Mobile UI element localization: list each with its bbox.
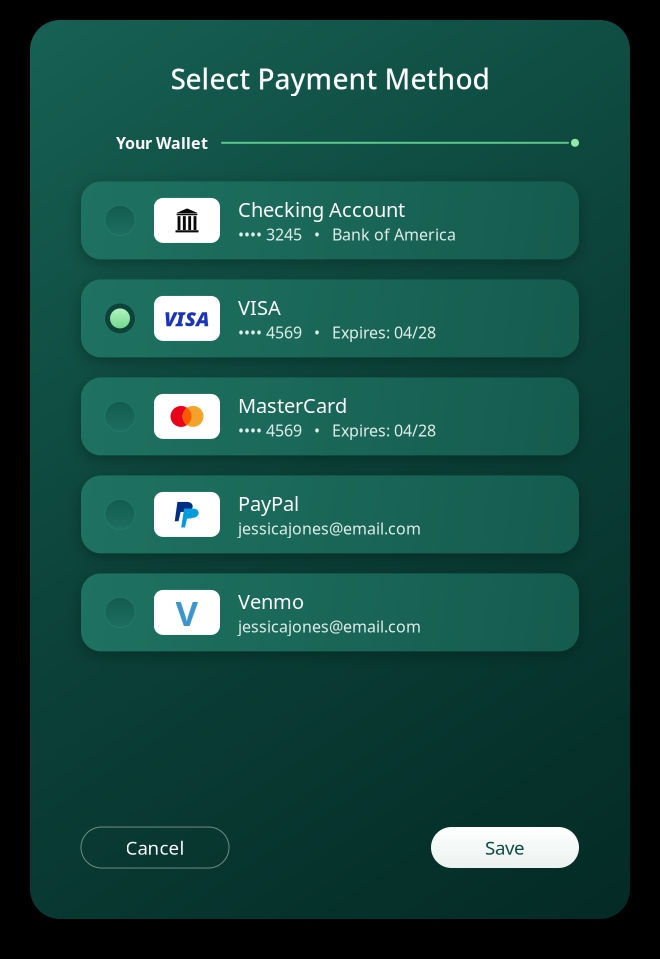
button[interactable]: Cancel [81, 827, 229, 868]
button[interactable]: PayPal [81, 475, 579, 553]
staticText: PayPal [238, 490, 299, 517]
staticText: Save [485, 835, 525, 860]
staticText: Cancel [125, 835, 184, 860]
button[interactable]: V [81, 573, 579, 651]
staticText: V [175, 589, 198, 635]
staticText: •••• 3245 • Bank of America [238, 224, 456, 245]
staticText: VISA [238, 294, 281, 321]
staticText: VISA [164, 305, 210, 332]
staticText: MasterCard [238, 392, 347, 419]
staticText: Your Wallet [116, 132, 208, 153]
staticText: •••• 4569 • Expires: 04/28 [238, 420, 436, 441]
staticText: Select Payment Method [170, 60, 489, 97]
staticText: jessicajones@email.com [238, 518, 421, 539]
button[interactable]: MasterCard [81, 377, 579, 455]
button[interactable]: VISA [81, 279, 579, 357]
staticText: Venmo [238, 588, 304, 615]
staticText: •••• 4569 • Expires: 04/28 [238, 322, 436, 343]
staticText: jessicajones@email.com [238, 616, 421, 637]
button[interactable]: Save [431, 827, 579, 868]
staticText: Checking Account [238, 196, 405, 223]
button[interactable]: Checking Account [81, 181, 579, 259]
